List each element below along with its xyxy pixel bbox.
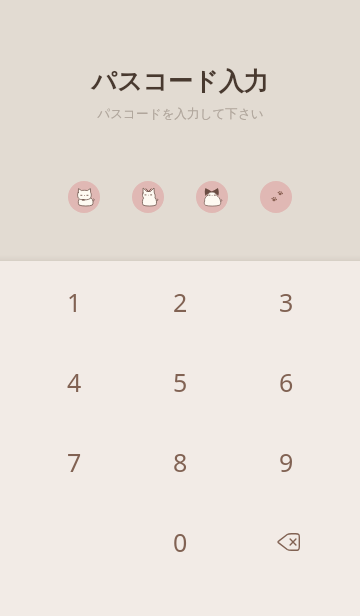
- button[interactable]: 5: [127, 342, 233, 422]
- button[interactable]: 3: [233, 262, 339, 342]
- staticText: 4: [67, 365, 82, 399]
- staticText: 2: [173, 285, 188, 319]
- staticText: 0: [173, 525, 188, 559]
- staticText: 8: [173, 445, 188, 479]
- staticText: パスコードを入力して下さい: [97, 106, 264, 122]
- staticText: 5: [173, 365, 188, 399]
- button[interactable]: 8: [127, 422, 233, 502]
- staticText: 9: [279, 445, 294, 479]
- button[interactable]: 0: [127, 502, 233, 582]
- button[interactable]: 7: [21, 422, 127, 502]
- staticText: 6: [279, 365, 294, 399]
- button[interactable]: 6: [233, 342, 339, 422]
- button[interactable]: 9: [233, 422, 339, 502]
- staticText: 7: [67, 445, 82, 479]
- staticText: 3: [279, 285, 294, 319]
- button[interactable]: 4: [21, 342, 127, 422]
- button[interactable]: Delete: [233, 502, 339, 582]
- staticText: 1: [67, 285, 82, 319]
- button[interactable]: 2: [127, 262, 233, 342]
- staticText: パスコード入力: [91, 66, 269, 97]
- button[interactable]: 1: [21, 262, 127, 342]
